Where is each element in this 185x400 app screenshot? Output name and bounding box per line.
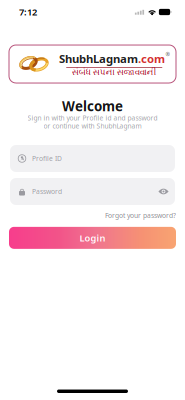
staticText: Password [32,187,62,196]
staticText: Sign in with your Profile id and passwor… [27,114,157,122]
button[interactable]: Forgot your password? [105,211,176,220]
staticText: or continue with ShubhLagnam [43,122,141,130]
staticText: Forgot your password? [105,211,176,220]
staticText: Login [79,232,105,244]
staticText: ® [165,51,169,58]
button[interactable]: Login [9,227,176,249]
button[interactable]: Profile ID [10,145,175,172]
staticText: ShubhLagnam [59,51,138,66]
staticText: 7:12 [19,6,37,18]
staticText: Profile ID [32,154,62,163]
staticText: .com [138,51,165,66]
button[interactable]: Password [10,178,175,205]
staticText: સંબંધ સપના સજાવવાની [72,68,157,77]
staticText: Welcome [62,97,123,115]
